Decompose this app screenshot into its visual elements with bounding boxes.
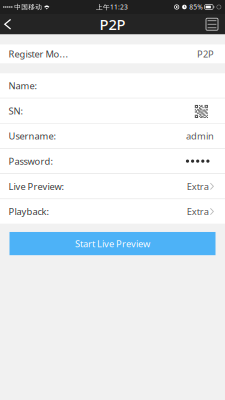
staticText: Live Preview: xyxy=(8,180,64,192)
staticText: 上午11:23 xyxy=(96,3,128,11)
staticText: Extra xyxy=(187,205,209,218)
staticText: SN: xyxy=(8,105,23,117)
button[interactable]: Start Live Preview xyxy=(9,232,215,255)
staticText: Username: xyxy=(8,130,56,142)
staticText: Playback: xyxy=(8,205,49,218)
staticText: Start Live Preview xyxy=(75,237,150,250)
staticText: 85% xyxy=(189,3,203,11)
button[interactable]: Live Preview: xyxy=(0,174,225,199)
button[interactable]: Playback: xyxy=(0,199,225,224)
staticText: Extra xyxy=(187,180,209,192)
button[interactable]: Save xyxy=(197,15,225,33)
staticText: Register Mo... xyxy=(8,48,68,60)
button[interactable]: Back xyxy=(0,16,20,33)
staticText: P2P xyxy=(197,48,214,60)
staticText: admin xyxy=(186,130,214,142)
staticText: 中国移动 xyxy=(14,3,42,11)
staticText: Name: xyxy=(8,79,37,92)
button[interactable]: Scan SN QR code xyxy=(195,102,214,119)
staticText: Password: xyxy=(8,155,53,167)
staticText: P2P xyxy=(99,14,125,34)
